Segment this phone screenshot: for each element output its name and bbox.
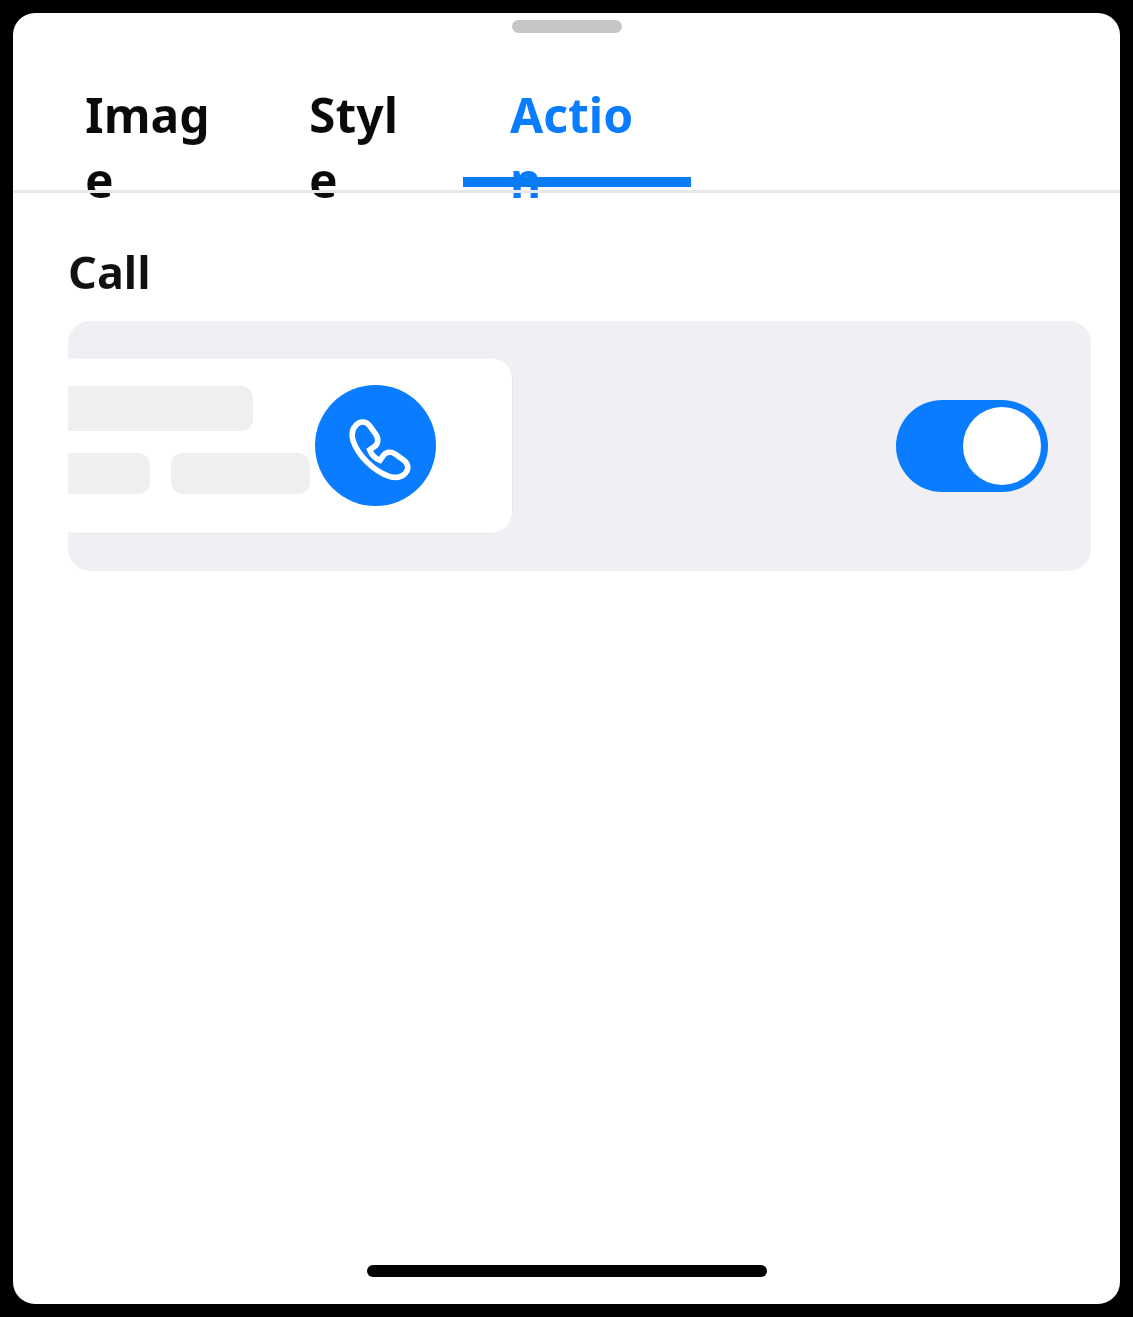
staticText: Call <box>68 241 151 302</box>
button[interactable]: Action <box>510 40 646 190</box>
staticText: Action <box>510 82 646 212</box>
button[interactable]: Style <box>309 40 417 190</box>
staticText: Image <box>85 82 218 212</box>
button[interactable]: Image <box>85 40 218 190</box>
button[interactable]: Call action enabled <box>896 400 1048 492</box>
button[interactable]: Call <box>315 385 436 506</box>
button[interactable]: Call <box>68 321 1091 571</box>
staticText: Style <box>309 82 417 212</box>
